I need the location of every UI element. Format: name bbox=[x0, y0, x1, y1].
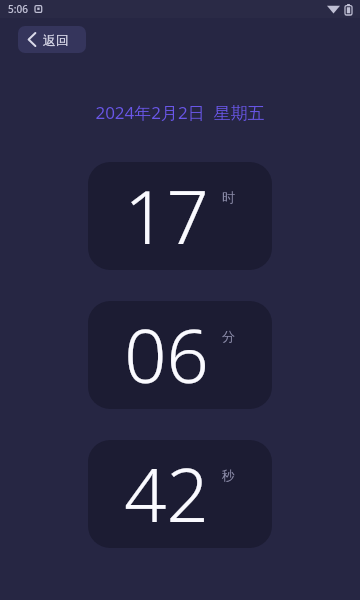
staticText: 分 bbox=[222, 328, 235, 344]
button[interactable]: 42 bbox=[88, 440, 272, 548]
staticText: 06 bbox=[124, 304, 209, 405]
staticText: 42 bbox=[124, 443, 209, 544]
staticText: 返回 bbox=[43, 32, 69, 48]
button[interactable]: 17 bbox=[88, 162, 272, 270]
staticText: 时 bbox=[222, 189, 235, 205]
staticText: 17 bbox=[124, 165, 209, 266]
staticText: 5:06 bbox=[8, 2, 28, 16]
staticText: 2024年2月2日 星期五 bbox=[95, 101, 265, 124]
button[interactable]: 返回 bbox=[18, 26, 86, 53]
button[interactable]: 06 bbox=[88, 301, 272, 409]
staticText: 秒 bbox=[222, 467, 235, 483]
